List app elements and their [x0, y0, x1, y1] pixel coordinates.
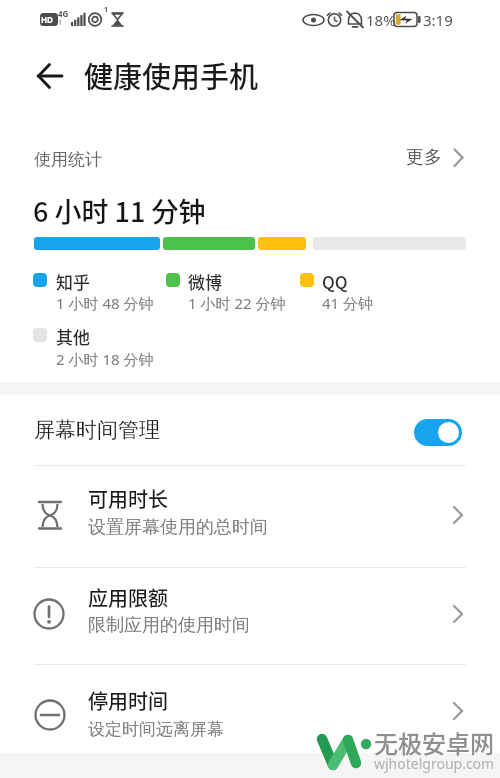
staticText: QQ: [322, 269, 348, 294]
staticText: wjhotelgroup.com: [374, 754, 495, 773]
staticText: 无极安卓网: [374, 725, 494, 760]
staticText: 停用时间: [88, 686, 168, 715]
button[interactable]: [0, 466, 500, 567]
staticText: 6 小时 11 分钟: [33, 191, 206, 230]
staticText: 3:19: [423, 10, 453, 30]
staticText: 屏幕时间管理: [34, 417, 160, 443]
staticText: 18%: [366, 10, 396, 30]
staticText: 限制应用的使用时间: [88, 614, 250, 637]
staticText: 健康使用手机: [84, 54, 259, 96]
staticText: 41 分钟: [322, 293, 374, 313]
button[interactable]: [24, 52, 72, 96]
staticText: 其他: [56, 324, 90, 349]
staticText: 设定时间远离屏幕: [88, 719, 224, 740]
staticText: 1 小时 22 分钟: [188, 293, 286, 313]
staticText: 1: [104, 5, 109, 15]
button[interactable]: [0, 395, 500, 465]
staticText: 知乎: [56, 269, 90, 294]
staticText: 1: [58, 18, 63, 28]
staticText: 应用限额: [88, 583, 168, 612]
button[interactable]: [0, 568, 500, 664]
staticText: 1 小时 48 分钟: [56, 293, 154, 313]
staticText: 2 小时 18 分钟: [56, 349, 154, 369]
staticText: 可用时长: [88, 484, 168, 513]
staticText: 使用统计: [34, 149, 102, 170]
button[interactable]: [0, 665, 500, 753]
button[interactable]: [396, 140, 468, 176]
staticText: 微博: [188, 269, 222, 294]
staticText: HD: [41, 14, 53, 25]
button[interactable]: [414, 419, 462, 446]
staticText: 设置屏幕使用的总时间: [88, 516, 268, 539]
staticText: 更多: [406, 146, 442, 169]
staticText: 4G: [58, 8, 69, 19]
